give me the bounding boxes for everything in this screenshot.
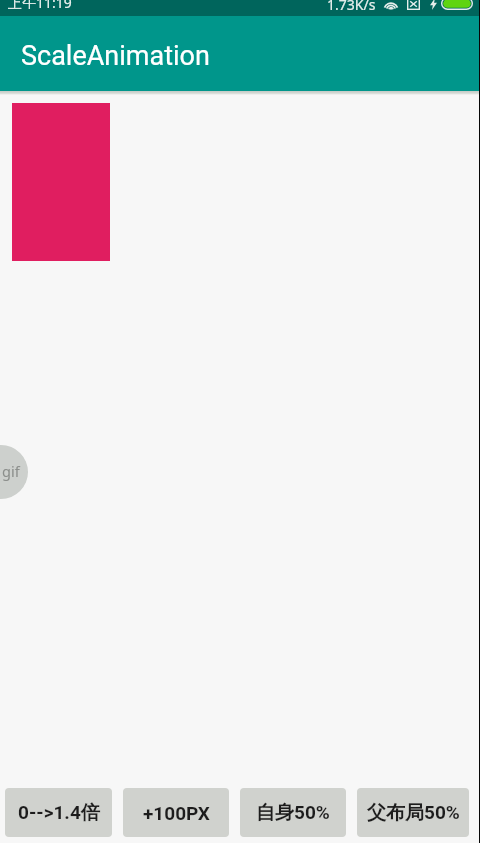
- staticText: 父布局50%: [367, 801, 460, 825]
- staticText: 自身50%: [256, 801, 330, 825]
- button[interactable]: 父布局50%: [357, 788, 469, 837]
- staticText: 1.73K/s: [327, 0, 376, 11]
- button[interactable]: 自身50%: [240, 788, 346, 837]
- staticText: ScaleAnimation: [21, 40, 210, 72]
- button[interactable]: +100PX: [123, 788, 229, 837]
- staticText: 0-->1.4倍: [18, 801, 100, 825]
- staticText: +100PX: [143, 802, 210, 824]
- button[interactable]: 0-->1.4倍: [5, 788, 112, 837]
- staticText: gif: [2, 461, 20, 481]
- staticText: 上午11:19: [8, 0, 72, 9]
